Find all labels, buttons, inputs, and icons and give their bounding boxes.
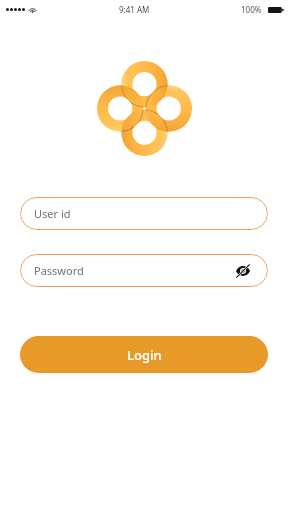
staticText: 100% xyxy=(241,4,262,15)
staticText: User id xyxy=(34,206,71,221)
button[interactable]: Password xyxy=(20,254,268,287)
staticText: Password xyxy=(34,263,84,278)
staticText: Login xyxy=(127,346,162,364)
button[interactable]: Show password xyxy=(233,261,253,281)
button[interactable]: Login xyxy=(20,336,268,373)
button[interactable]: User id xyxy=(20,197,268,230)
staticText: 9:41 AM xyxy=(119,4,150,15)
